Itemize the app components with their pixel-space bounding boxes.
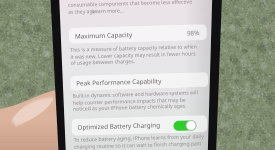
staticText: To reduce battery aging, iPhone learns f…: [74, 133, 204, 144]
staticText: as they age.: [68, 8, 97, 16]
staticText: Built-in dynamic software and hardware s…: [72, 89, 199, 100]
button[interactable]: Optimized Battery Charging: [71, 115, 208, 136]
staticText: Learn more...: [92, 7, 124, 15]
staticText: 98%: [187, 28, 200, 38]
staticText: charging routine so it can wait to finis…: [74, 140, 202, 150]
button[interactable]: Maximum Capacity: [69, 24, 207, 44]
staticText: consumable components that become less e…: [68, 0, 193, 9]
staticText: Optimized Battery Charging: [77, 120, 160, 132]
staticText: noticed as your iPhone battery chemicall…: [73, 103, 187, 113]
staticText: This is a measure of battery capacity re…: [70, 43, 197, 54]
staticText: it was new. Lower capacity may result in…: [70, 50, 196, 61]
button[interactable]: Optimized Battery Charging toggle: [173, 120, 197, 131]
button[interactable]: Peak Performance Capability: [70, 72, 208, 91]
staticText: Peak Performance Capability: [76, 76, 162, 88]
staticText: of usage between charges.: [71, 58, 136, 67]
staticText: help counter performance impacts that ma…: [73, 97, 186, 107]
staticText: Maximum Capacity: [75, 30, 133, 41]
